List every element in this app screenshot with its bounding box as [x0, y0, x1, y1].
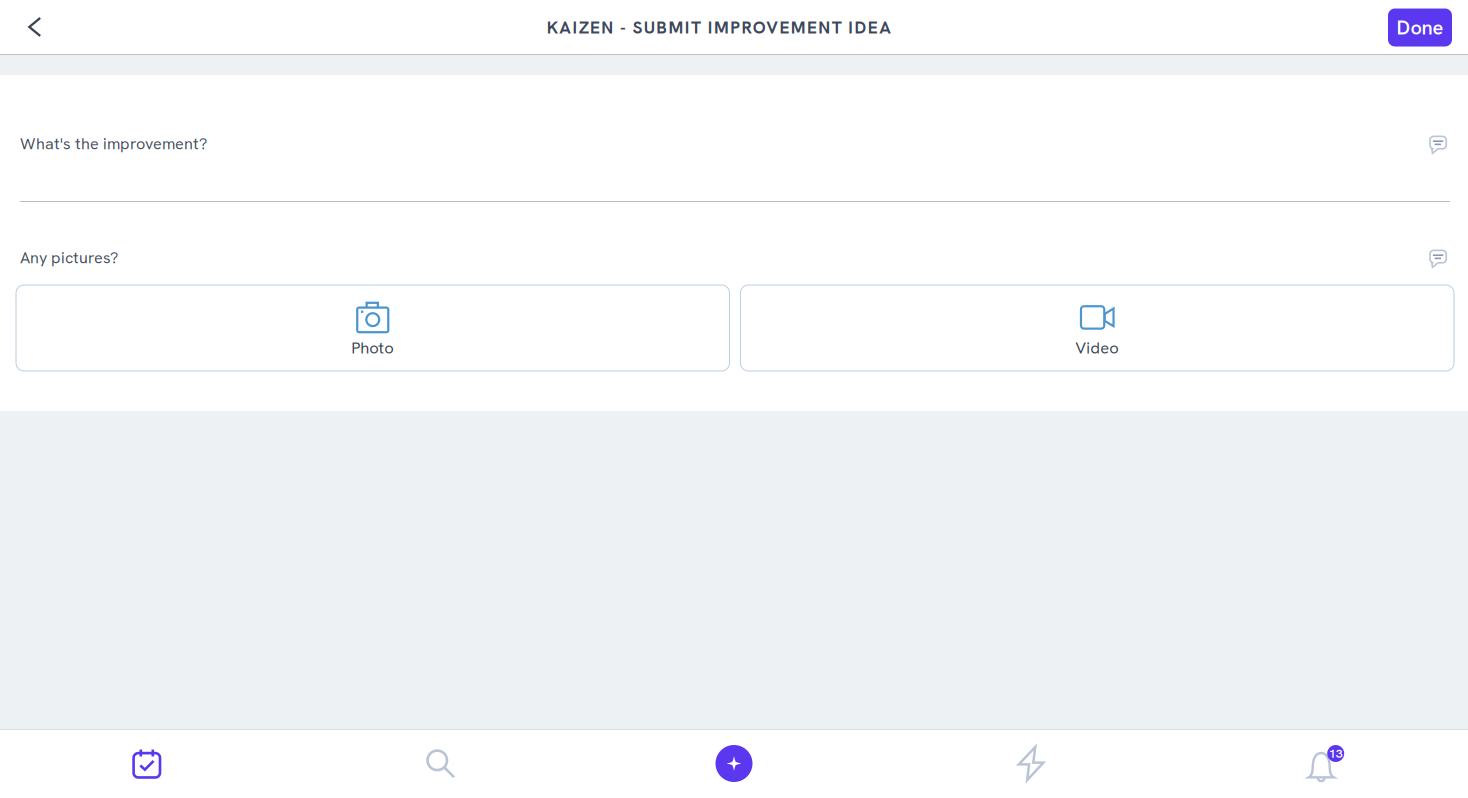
button[interactable]: Done [1388, 8, 1452, 46]
staticText: Done [1396, 14, 1443, 41]
staticText: KAIZEN - SUBMIT IMPROVEMENT IDEA [547, 16, 891, 39]
button[interactable]: Notifications [1174, 729, 1468, 798]
staticText: Video [1075, 337, 1119, 359]
button[interactable]: Tasks [0, 729, 294, 798]
button[interactable]: Back [0, 1, 59, 54]
staticText: Any pictures? [20, 247, 118, 268]
staticText: Photo [351, 337, 394, 359]
button[interactable]: Activity [881, 729, 1174, 798]
button[interactable]: Photo [16, 285, 729, 371]
button[interactable]: Video [740, 285, 1454, 371]
button[interactable]: Add comment [1429, 134, 1447, 154]
staticText: 13 [1329, 745, 1343, 762]
button[interactable]: Search [294, 729, 587, 798]
staticText: What's the improvement? [20, 133, 207, 154]
button[interactable]: Create [587, 729, 881, 798]
button[interactable]: Add comment [1429, 248, 1447, 268]
